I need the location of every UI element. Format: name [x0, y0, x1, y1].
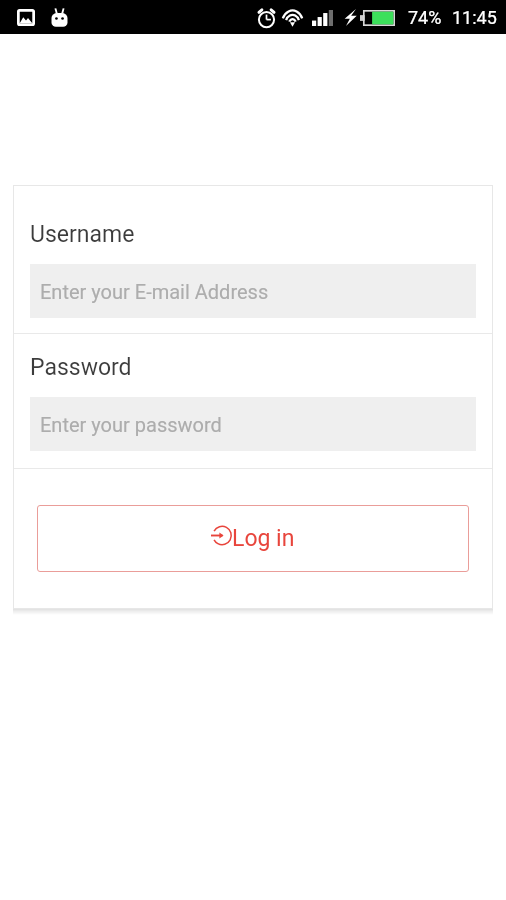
button[interactable]: Enter your password [30, 397, 476, 451]
staticText: Log in [232, 525, 295, 552]
other: Log in [211, 525, 232, 546]
staticText: Username [30, 221, 135, 248]
staticText: Enter your E-mail Address [40, 280, 269, 303]
staticText: Password [30, 354, 132, 381]
staticText: 74% [408, 7, 442, 28]
button[interactable]: Log in [37, 505, 469, 572]
button[interactable]: Enter your E-mail Address [30, 264, 476, 318]
staticText: Enter your password [40, 413, 222, 436]
staticText: 11:45 [452, 7, 497, 28]
